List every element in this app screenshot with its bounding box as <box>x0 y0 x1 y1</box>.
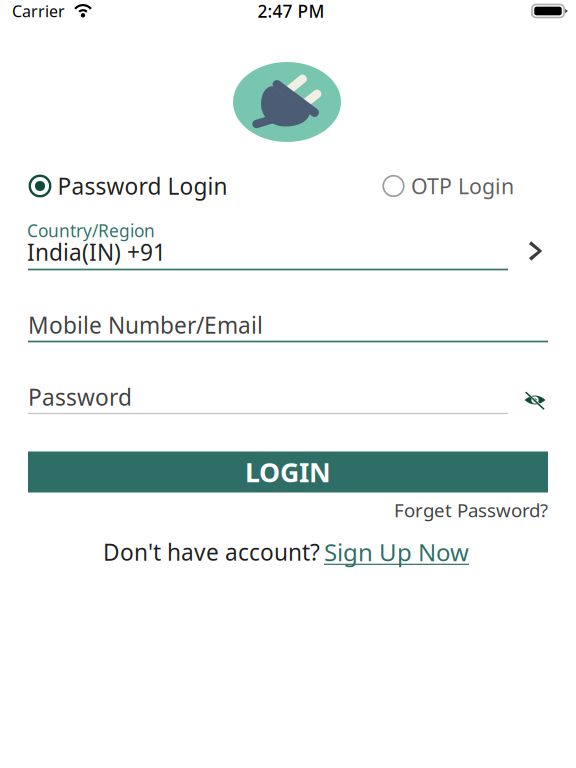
button[interactable]: Password Login <box>28 171 227 201</box>
staticText: LOGIN <box>245 454 331 490</box>
staticText: Password Login <box>57 171 227 201</box>
button[interactable]: Show password <box>513 380 557 420</box>
staticText: Mobile Number/Email <box>28 310 263 340</box>
button[interactable]: Sign Up Now <box>324 538 576 566</box>
staticText: Country/Region <box>27 219 155 242</box>
staticText: Forget Password? <box>394 498 548 522</box>
staticText: Don't have account? <box>103 537 320 567</box>
button[interactable]: OTP Login <box>382 171 514 201</box>
staticText: 2:47 PM <box>257 0 324 22</box>
staticText: OTP Login <box>411 172 514 200</box>
button[interactable]: Choose country or region <box>512 229 560 273</box>
button[interactable]: LOGIN <box>28 451 548 492</box>
staticText: Password <box>28 382 132 412</box>
staticText: India(IN) +91 <box>27 237 166 267</box>
staticText: Sign Up Now <box>324 536 469 568</box>
button[interactable]: Forget Password? <box>288 497 548 523</box>
staticText: Carrier <box>12 0 65 22</box>
